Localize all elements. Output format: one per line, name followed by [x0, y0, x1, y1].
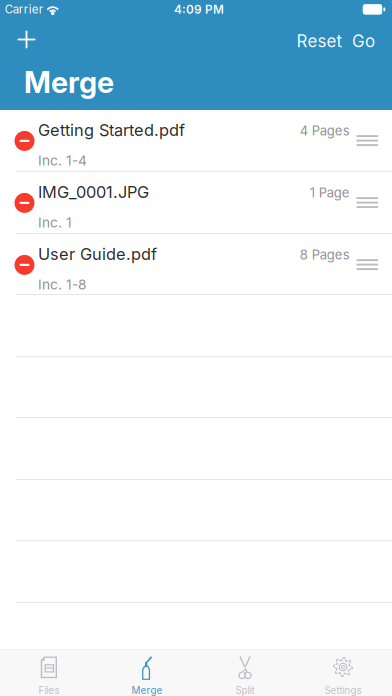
- staticText: Carrier: [5, 2, 43, 16]
- staticText: Inc. 1-8: [38, 276, 86, 293]
- button[interactable]: Remove Getting Started.pdf: [4, 121, 44, 161]
- button[interactable]: Remove User Guide.pdf: [4, 245, 44, 285]
- staticText: Reset: [296, 31, 342, 51]
- staticText: IMG_0001.JPG: [38, 182, 149, 202]
- staticText: Getting Started.pdf: [38, 120, 185, 140]
- button[interactable]: Remove IMG_0001.JPG: [4, 183, 44, 223]
- staticText: Split: [235, 685, 254, 696]
- staticText: User Guide.pdf: [38, 244, 157, 264]
- button[interactable]: Split: [196, 649, 294, 696]
- button[interactable]: Merge: [98, 649, 196, 696]
- button[interactable]: Settings: [294, 649, 392, 696]
- staticText: Inc. 1-4: [38, 152, 87, 169]
- staticText: 4:09 PM: [174, 2, 224, 17]
- button[interactable]: Go: [346, 24, 381, 58]
- button[interactable]: Reset: [290, 24, 348, 58]
- staticText: Merge: [131, 685, 162, 696]
- button[interactable]: Add file: [4, 21, 48, 57]
- button[interactable]: IMG_0001.JPG: [0, 172, 392, 234]
- staticText: Merge: [24, 65, 114, 100]
- staticText: 4 Pages: [300, 123, 350, 139]
- button[interactable]: User Guide.pdf: [0, 234, 392, 295]
- button[interactable]: Getting Started.pdf: [0, 110, 392, 172]
- staticText: Inc. 1: [38, 214, 72, 231]
- button[interactable]: Files: [0, 649, 98, 696]
- staticText: Go: [352, 31, 375, 51]
- staticText: Files: [38, 685, 59, 696]
- staticText: Settings: [324, 685, 361, 696]
- staticText: 8 Pages: [300, 247, 350, 263]
- staticText: 1 Page: [310, 185, 350, 201]
